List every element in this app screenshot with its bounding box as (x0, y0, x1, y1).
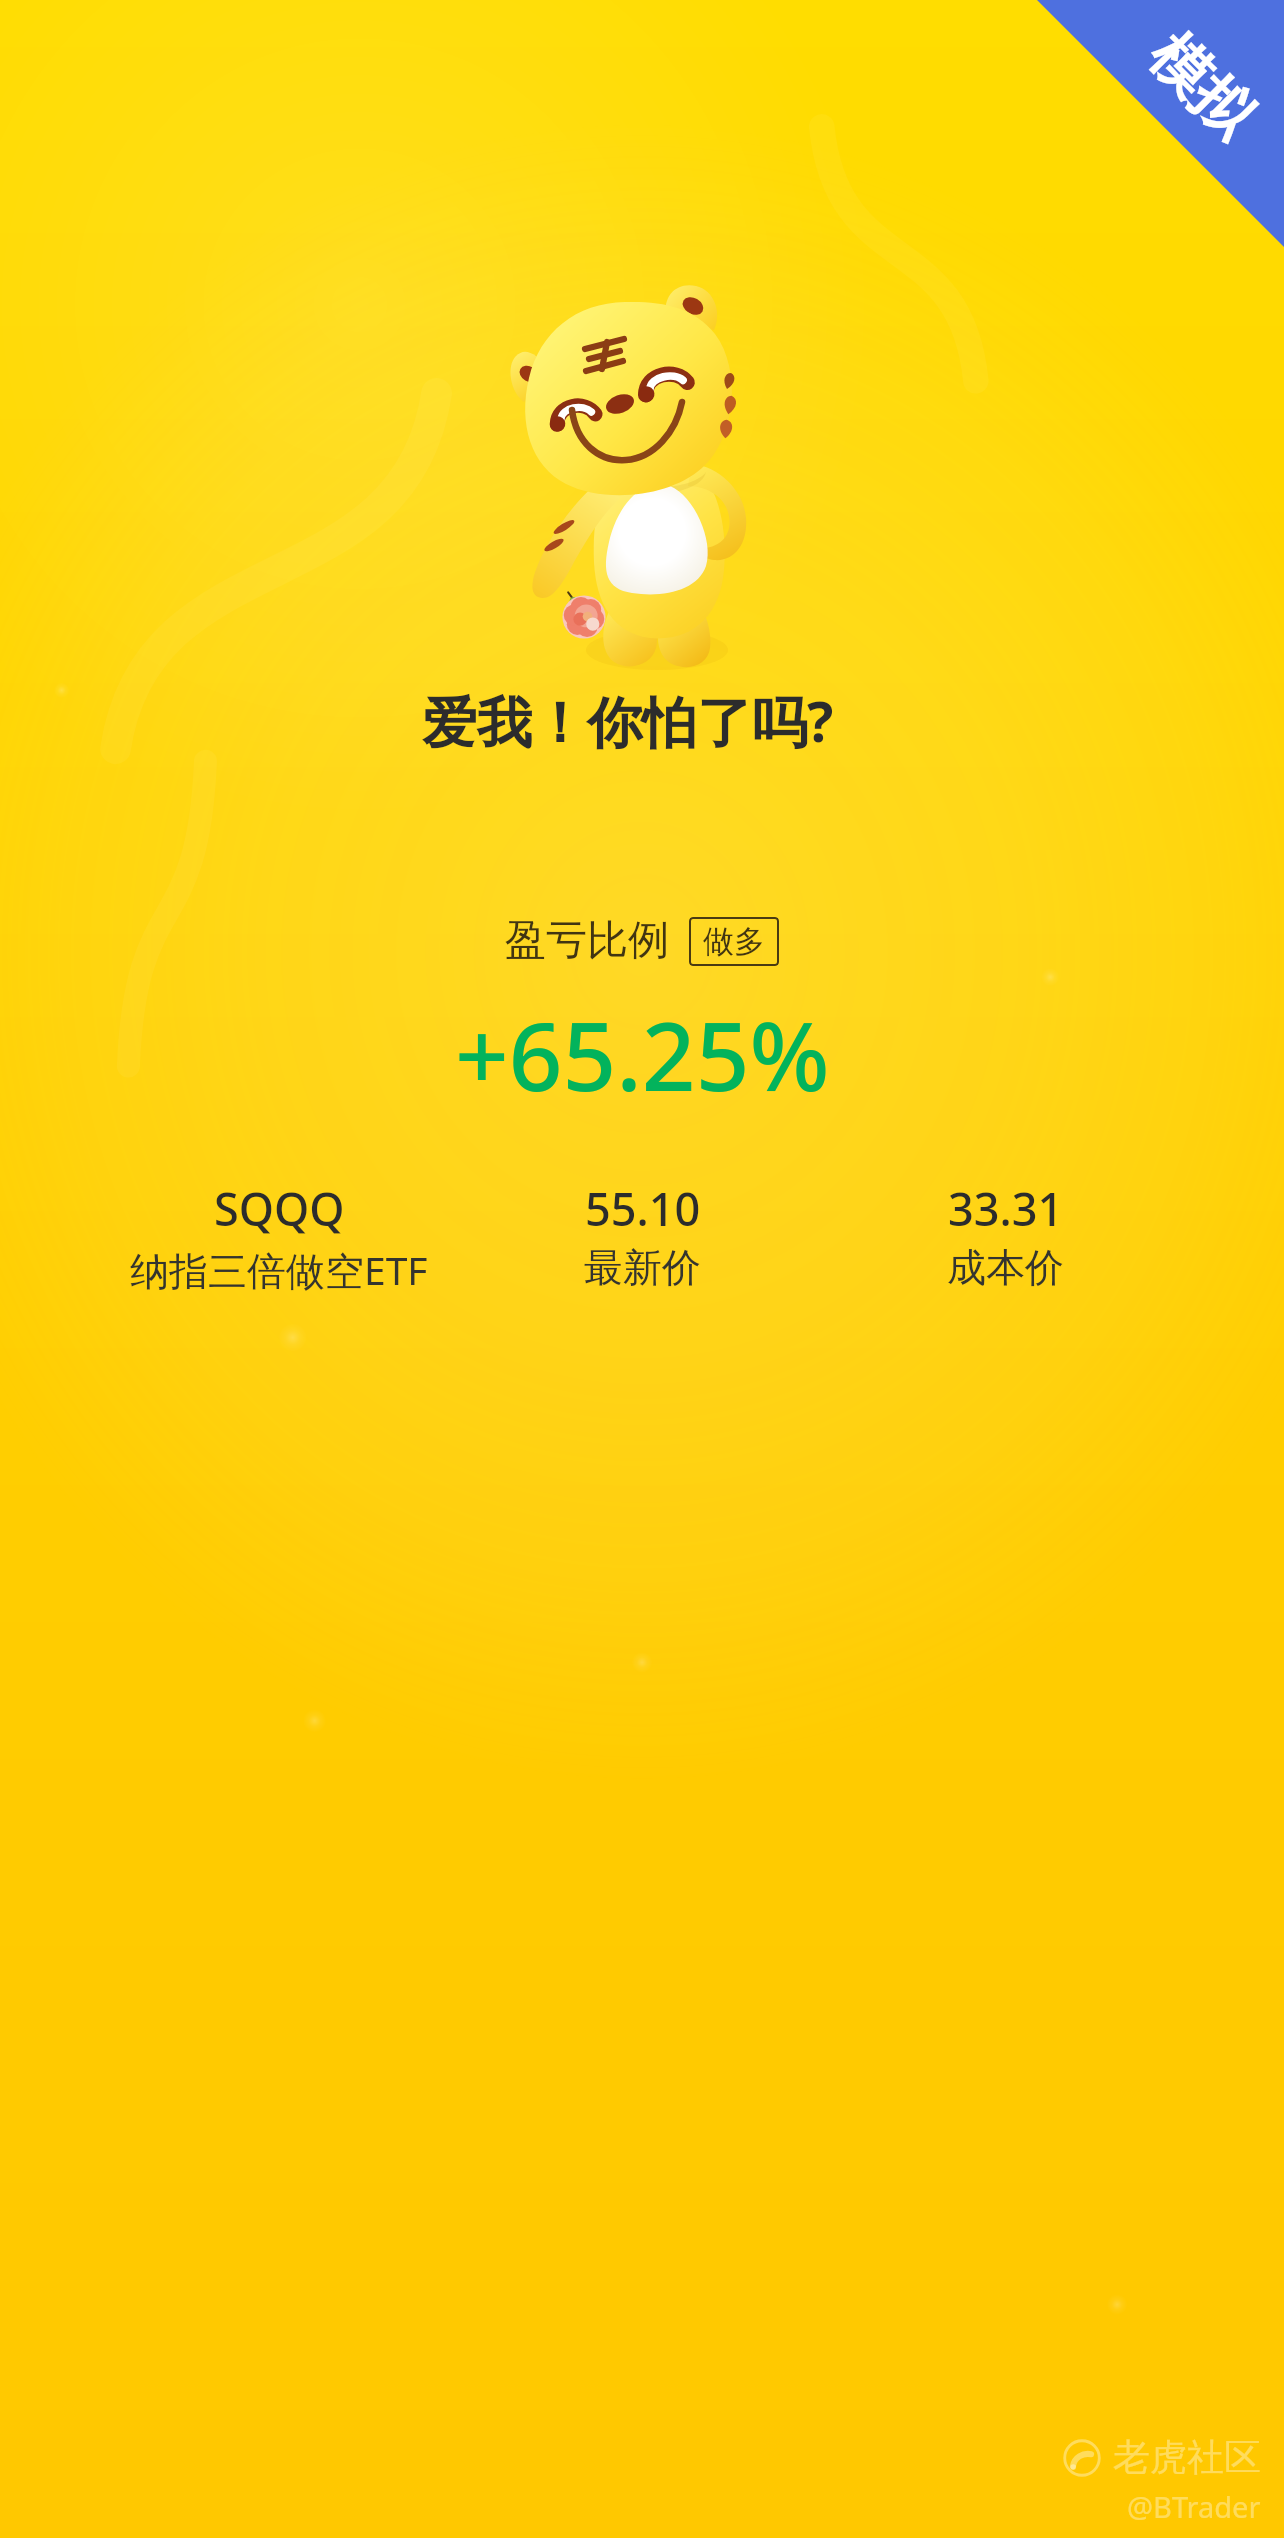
staticText: 盈亏比例 (505, 915, 669, 967)
staticText: 纳指三倍做空ETF (130, 1243, 428, 1296)
staticText: 模拟 (1135, 19, 1268, 153)
button[interactable]: 老虎社区 (1063, 2434, 1261, 2481)
staticText: 33.31 (948, 1178, 1064, 1239)
staticText: 爱我！你怕了吗? (422, 683, 834, 758)
button[interactable]: 模拟 (1089, 0, 1284, 199)
staticText: SQQQ (214, 1178, 345, 1239)
staticText: 做多 (703, 922, 765, 961)
staticText: +65.25% (455, 991, 830, 1119)
staticText: 成本价 (947, 1243, 1064, 1292)
staticText: @BTrader (1127, 2487, 1261, 2526)
button[interactable]: SQQQ (97, 1178, 461, 1296)
staticText: 老虎社区 (1113, 2434, 1261, 2481)
button[interactable]: 做多 (689, 917, 779, 966)
button[interactable]: 33.31 (824, 1178, 1187, 1292)
button[interactable]: Tiger mascot (494, 296, 790, 692)
staticText: 55.10 (585, 1178, 701, 1239)
staticText: 最新价 (584, 1243, 701, 1292)
button[interactable]: 55.10 (461, 1178, 824, 1292)
